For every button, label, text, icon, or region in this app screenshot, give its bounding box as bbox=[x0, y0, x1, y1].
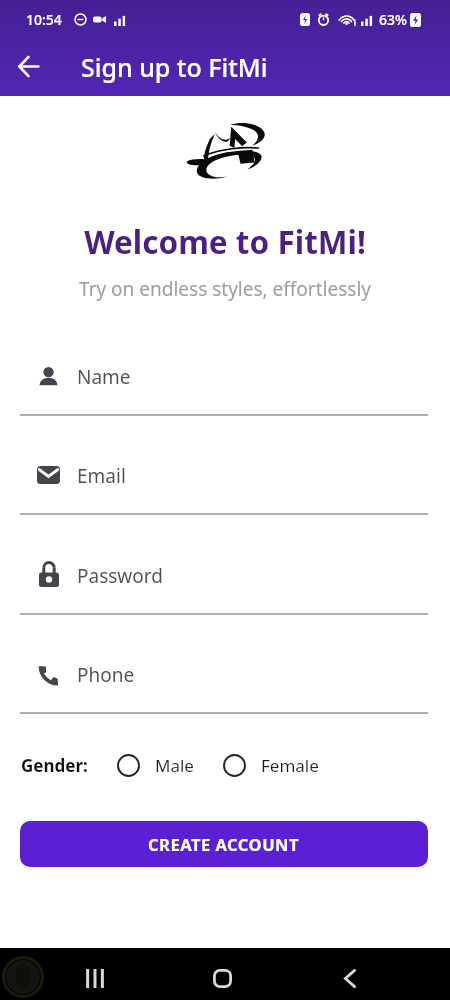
staticText: Sign up to FitMi bbox=[81, 50, 268, 84]
button[interactable]: Recent apps bbox=[73, 956, 117, 1000]
button[interactable]: Back bbox=[328, 956, 372, 1000]
button[interactable]: Home bbox=[200, 956, 244, 1000]
staticText: 63% bbox=[379, 10, 407, 29]
button[interactable]: Phone bbox=[0, 633, 450, 713]
staticText: Name bbox=[77, 364, 131, 390]
button[interactable]: Email bbox=[0, 434, 450, 514]
button[interactable]: Back bbox=[4, 42, 52, 90]
button[interactable]: Name bbox=[0, 335, 450, 415]
staticText: Gender: bbox=[21, 754, 88, 777]
staticText: Male bbox=[155, 754, 194, 777]
staticText: Email bbox=[77, 463, 126, 489]
button[interactable]: Password bbox=[0, 534, 450, 614]
button[interactable]: Male bbox=[117, 751, 194, 779]
staticText: Female bbox=[261, 754, 319, 777]
button[interactable]: CREATE ACCOUNT bbox=[20, 821, 428, 867]
staticText: Password bbox=[77, 563, 163, 589]
staticText: Phone bbox=[77, 662, 135, 688]
staticText: 10:54 bbox=[26, 10, 62, 29]
button[interactable]: Female bbox=[223, 751, 319, 779]
staticText: Welcome to FitMi! bbox=[0, 220, 450, 263]
staticText: CREATE ACCOUNT bbox=[148, 833, 300, 855]
staticText: Try on endless styles, effortlessly bbox=[0, 276, 450, 302]
